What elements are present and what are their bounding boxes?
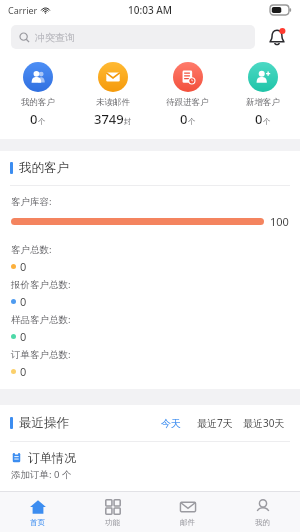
staticText: 功能 xyxy=(105,518,120,527)
button[interactable]: 今天 xyxy=(158,415,184,432)
staticText: 最近30天 xyxy=(243,416,285,430)
button[interactable]: 功能 xyxy=(75,492,150,532)
button[interactable]: 邮件 xyxy=(150,492,225,532)
staticText: 0 xyxy=(255,110,263,128)
staticText: 0 xyxy=(20,294,27,309)
button[interactable]: 我的客户 xyxy=(0,60,75,130)
staticText: 样品客户总数: xyxy=(11,313,71,326)
staticText: 个 xyxy=(263,117,271,126)
staticText: 我的客户 xyxy=(19,160,69,176)
staticText: 我的客户 xyxy=(21,97,55,108)
button[interactable]: 订单情况 xyxy=(0,450,300,465)
staticText: 个 xyxy=(188,117,196,126)
staticText: 0 xyxy=(20,259,27,274)
staticText: 待跟进客户 xyxy=(166,97,209,108)
staticText: 个 xyxy=(38,117,46,126)
staticText: 添加订单: 0 个 xyxy=(11,468,72,481)
staticText: 客户总数: xyxy=(11,243,52,256)
staticText: 冲突查询 xyxy=(35,31,75,44)
staticText: 100 xyxy=(270,214,289,229)
staticText: 0 xyxy=(30,110,38,128)
staticText: 首页 xyxy=(30,518,45,527)
button[interactable]: 最近30天 xyxy=(240,414,288,432)
staticText: 新增客户 xyxy=(246,97,280,108)
staticText: 今天 xyxy=(161,417,181,430)
button[interactable]: 未读邮件 xyxy=(75,60,150,130)
staticText: 3749 xyxy=(94,110,124,128)
staticText: 0 xyxy=(20,329,27,344)
staticText: 最近7天 xyxy=(197,416,233,430)
staticText: 订单客户总数: xyxy=(11,348,71,361)
staticText: 报价客户总数: xyxy=(11,278,71,291)
button[interactable]: 最近7天 xyxy=(194,414,236,432)
staticText: 未读邮件 xyxy=(96,97,130,108)
staticText: 订单情况 xyxy=(28,450,76,465)
button[interactable]: 通知 xyxy=(265,25,289,49)
staticText: 最近操作 xyxy=(19,415,69,431)
staticText: 0 xyxy=(180,110,188,128)
staticText: 我的 xyxy=(255,518,270,527)
staticText: 0 xyxy=(20,364,27,379)
button[interactable]: 首页 xyxy=(0,492,75,532)
button[interactable]: 冲突查询 xyxy=(11,25,255,49)
staticText: Carrier xyxy=(8,4,38,16)
staticText: 10:03 AM xyxy=(128,3,172,17)
staticText: 封 xyxy=(124,117,132,126)
button[interactable]: 我的 xyxy=(225,492,300,532)
staticText: 邮件 xyxy=(180,518,195,527)
staticText: 客户库容: xyxy=(11,195,52,208)
button[interactable]: 新增客户 xyxy=(225,60,300,130)
button[interactable]: 待跟进客户 xyxy=(150,60,225,130)
